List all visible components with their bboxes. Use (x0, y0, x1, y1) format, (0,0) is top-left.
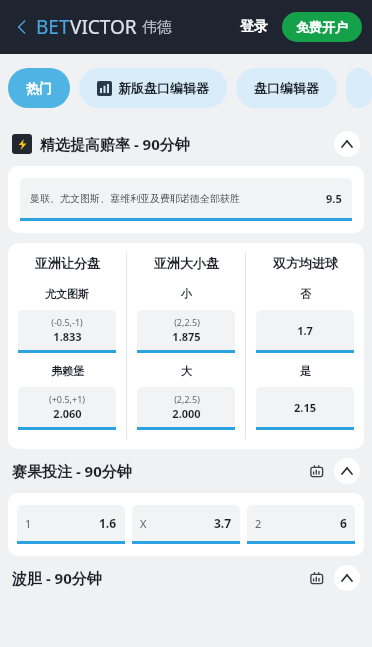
staticText: 热门 (26, 80, 52, 96)
staticText: 精选提高赔率 - 90分钟 (40, 134, 190, 154)
button[interactable]: Back (10, 15, 34, 39)
staticText: 1.875 (172, 329, 201, 344)
button[interactable]: (2,2.5) (137, 387, 235, 430)
button[interactable]: 新版盘口编辑器 (79, 68, 227, 108)
button[interactable]: 1.7 (256, 310, 354, 353)
staticText: 6 (340, 515, 347, 531)
staticText: 弗赖堡 (51, 364, 84, 378)
staticText: 伟德 (142, 18, 172, 37)
staticText: 3.7 (214, 515, 232, 531)
staticText: 曼联、尤文图斯、塞维利亚及费耶诺德全部获胜 (30, 192, 240, 205)
staticText: 9.5 (326, 191, 342, 206)
staticText: 是 (300, 364, 311, 378)
button[interactable]: Statistics (306, 567, 328, 589)
staticText: 新版盘口编辑器 (118, 80, 209, 96)
staticText: (2,2.5) (174, 393, 200, 405)
staticText: 2.15 (294, 400, 316, 415)
staticText: 2.000 (172, 406, 201, 421)
staticText: 赛果投注 - 90分钟 (12, 461, 132, 481)
staticText: VICTOR (70, 14, 137, 40)
button[interactable]: 提高赔率 (346, 68, 372, 108)
button[interactable]: (+0.5,+1) (18, 387, 116, 430)
button[interactable]: 热门 (8, 68, 70, 108)
button[interactable]: 曼联、尤文图斯、塞维利亚及费耶诺德全部获胜 (20, 178, 352, 221)
button[interactable]: Collapse section (334, 131, 360, 157)
button[interactable]: 盘口编辑器 (236, 68, 337, 108)
button[interactable]: 2 (247, 505, 355, 544)
button[interactable]: 免费开户 (282, 12, 362, 42)
button[interactable]: 2.15 (256, 387, 354, 430)
staticText: (-0.5,-1) (51, 316, 83, 328)
button[interactable]: (-0.5,-1) (18, 310, 116, 353)
staticText: 亚洲让分盘 (35, 255, 100, 271)
button[interactable]: Collapse section (334, 458, 360, 484)
button[interactable]: Collapse section (334, 565, 360, 591)
staticText: 登录 (240, 18, 268, 36)
button[interactable]: Statistics (306, 460, 328, 482)
staticText: 波胆 - 90分钟 (12, 568, 102, 588)
staticText: 尤文图斯 (45, 287, 89, 301)
staticText: 亚洲大小盘 (154, 255, 219, 271)
staticText: 1 (25, 516, 32, 531)
staticText: X (140, 516, 147, 531)
staticText: 2.060 (53, 406, 82, 421)
button[interactable]: 1 (17, 505, 125, 544)
staticText: 盘口编辑器 (254, 80, 319, 96)
button[interactable]: (2,2.5) (137, 310, 235, 353)
staticText: (+0.5,+1) (49, 393, 85, 405)
staticText: 双方均进球 (273, 255, 338, 271)
button[interactable]: X (132, 505, 240, 544)
staticText: 1.7 (297, 323, 313, 338)
staticText: 1.833 (53, 329, 82, 344)
staticText: 否 (300, 287, 311, 301)
button[interactable]: 登录 (232, 12, 276, 42)
staticText: 免费开户 (296, 19, 348, 35)
staticText: 小 (181, 287, 192, 301)
staticText: BET (36, 14, 70, 40)
staticText: 2 (255, 516, 262, 531)
staticText: (2,2.5) (174, 316, 200, 328)
staticText: 1.6 (99, 515, 117, 531)
staticText: 大 (181, 364, 192, 378)
